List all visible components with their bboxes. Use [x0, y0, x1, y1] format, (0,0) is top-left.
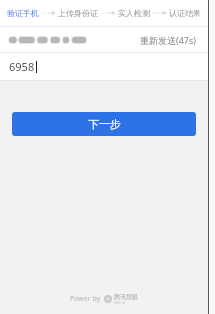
button[interactable]: 上传身份证 — [57, 5, 99, 21]
staticText: FACE IN — [114, 301, 125, 305]
button[interactable]: 验证手机 — [6, 5, 40, 21]
staticText: 下一步 — [88, 117, 121, 131]
button[interactable]: 6958 — [0, 53, 208, 80]
staticText: 实人检测 — [118, 8, 150, 18]
button[interactable]: 重新发送(47s) — [138, 31, 199, 49]
staticText: Power by — [70, 294, 101, 304]
staticText: 上传身份证 — [58, 8, 98, 18]
staticText: 腾讯慧眼 — [114, 293, 138, 301]
button[interactable]: 下一步 — [12, 112, 196, 136]
button[interactable]: 实人检测 — [117, 5, 151, 21]
staticText: 6958 — [9, 59, 35, 74]
staticText: 认证结果 — [169, 8, 201, 18]
button[interactable]: 认证结果 — [168, 5, 202, 21]
staticText: 重新发送(47s) — [140, 34, 197, 46]
staticText: 验证手机 — [7, 8, 39, 18]
other: 腾讯慧眼 logo — [104, 295, 112, 303]
other: 手机号 — [9, 36, 86, 44]
